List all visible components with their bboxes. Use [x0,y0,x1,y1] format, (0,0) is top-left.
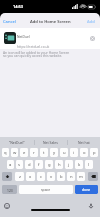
button[interactable]: y [50,148,58,157]
staticText: z [19,174,21,180]
staticText: g [48,162,51,168]
staticText: j [68,162,70,168]
button[interactable]: 123 [2,185,17,194]
button[interactable]: space [19,185,73,194]
staticText: “NetDuel” [9,140,25,145]
button[interactable]: Dictation [88,203,94,209]
staticText: v [50,174,53,180]
button[interactable]: r [30,148,38,157]
button[interactable]: w [11,148,18,157]
button[interactable]: o [80,148,88,157]
button[interactable]: x [26,172,35,181]
button[interactable]: p [90,148,98,157]
button[interactable]: “NetDuel” [0,137,34,147]
button[interactable]: g [45,160,53,169]
staticText: a [9,162,12,168]
button[interactable]: n [67,172,75,181]
staticText: f [38,162,40,168]
staticText: k [78,162,81,168]
staticText: p [93,150,96,156]
staticText: l [88,162,90,168]
staticText: d [28,162,31,168]
staticText: q [4,150,7,156]
staticText: t [43,150,45,156]
staticText: i [73,150,75,156]
button[interactable]: i [70,148,78,157]
button[interactable]: d [25,160,33,169]
button[interactable]: u [60,148,68,157]
button[interactable]: Emoji keyboard [4,203,10,209]
button[interactable]: Cancel [3,19,16,25]
staticText: 14:53 [13,4,23,9]
button[interactable]: l [85,160,93,169]
staticText: u [63,150,66,156]
button[interactable]: Delete [88,172,98,181]
button[interactable]: c [37,172,45,181]
button[interactable]: z [15,172,24,181]
staticText: NetDuel [17,34,30,38]
staticText: s [18,162,21,168]
button[interactable]: h [55,160,63,169]
staticText: https://netduel.co.uk [17,44,50,48]
staticText: o [83,150,86,156]
staticText: Add to Home Screen [30,19,71,25]
staticText: Add [87,19,95,25]
staticText: n [70,174,73,180]
button[interactable]: Net Sales [34,137,67,147]
button[interactable]: j [65,160,73,169]
staticText: m [79,174,83,180]
button[interactable]: s [16,160,23,169]
button[interactable]: e [20,148,28,157]
button[interactable]: q [2,148,9,157]
staticText: y [53,150,56,156]
staticText: Net Sales [43,140,58,145]
staticText: e [23,150,26,156]
staticText: 123 [7,188,13,192]
staticText: Cancel [3,19,16,25]
staticText: b [60,174,63,180]
staticText: Net hat [78,140,90,145]
staticText: space [41,187,51,192]
button[interactable]: v [47,172,55,181]
staticText: h [58,162,61,168]
button[interactable]: Add [87,19,95,25]
staticText: r [33,150,35,156]
button[interactable]: f [35,160,43,169]
button[interactable]: Net hat [67,137,100,147]
staticText: done [82,187,91,192]
button[interactable]: t [40,148,48,157]
button[interactable]: m [77,172,85,181]
staticText: x [29,174,32,180]
button[interactable]: Clear text [90,36,95,41]
button[interactable]: Shift [2,172,12,181]
button[interactable]: b [57,172,65,181]
button[interactable]: k [75,160,83,169]
button[interactable]: done [75,185,98,194]
button[interactable]: a [7,160,14,169]
staticText: An icon will be added to your Home Scree… [3,50,72,58]
staticText: c [40,174,43,180]
staticText: w [13,150,17,156]
